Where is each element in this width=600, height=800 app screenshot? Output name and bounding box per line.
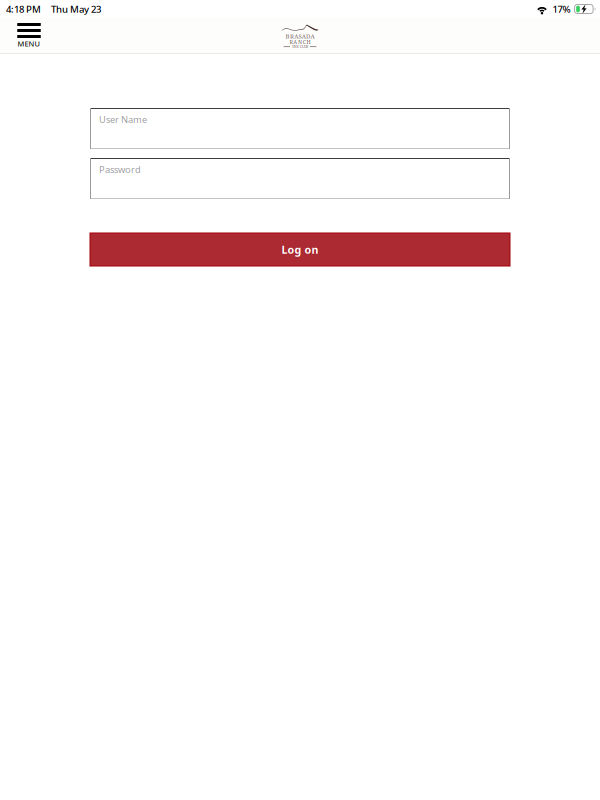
staticText xyxy=(299,44,300,49)
staticText: User Name xyxy=(99,113,147,126)
staticText: C xyxy=(300,44,302,49)
staticText: L xyxy=(302,44,304,49)
staticText: C xyxy=(303,38,306,46)
staticText: A xyxy=(310,32,314,40)
staticText: Password xyxy=(99,163,141,176)
staticText: B xyxy=(306,44,308,49)
button[interactable]: Log on xyxy=(90,233,510,266)
staticText: MENU xyxy=(17,38,40,49)
staticText: N xyxy=(298,38,302,46)
staticText: A xyxy=(302,32,306,40)
staticText: R xyxy=(289,38,292,46)
staticText: Log on xyxy=(281,242,318,257)
staticText: A xyxy=(293,38,297,46)
staticText: H xyxy=(294,44,297,49)
button[interactable]: Password xyxy=(90,158,510,199)
staticText: R xyxy=(290,32,294,40)
staticText: B xyxy=(286,32,290,40)
staticText: Thu May 23 xyxy=(51,2,101,16)
button[interactable]: Menu xyxy=(14,23,44,51)
staticText: U xyxy=(304,44,306,49)
button[interactable]: User Name xyxy=(90,108,510,149)
staticText: S xyxy=(298,32,301,40)
staticText: H xyxy=(306,38,310,46)
staticText: A xyxy=(294,32,298,40)
staticText: T xyxy=(292,44,294,49)
staticText: E xyxy=(297,44,299,49)
staticText: 17% xyxy=(552,2,570,16)
staticText: 4:18 PM xyxy=(6,2,41,16)
staticText: D xyxy=(306,32,310,40)
